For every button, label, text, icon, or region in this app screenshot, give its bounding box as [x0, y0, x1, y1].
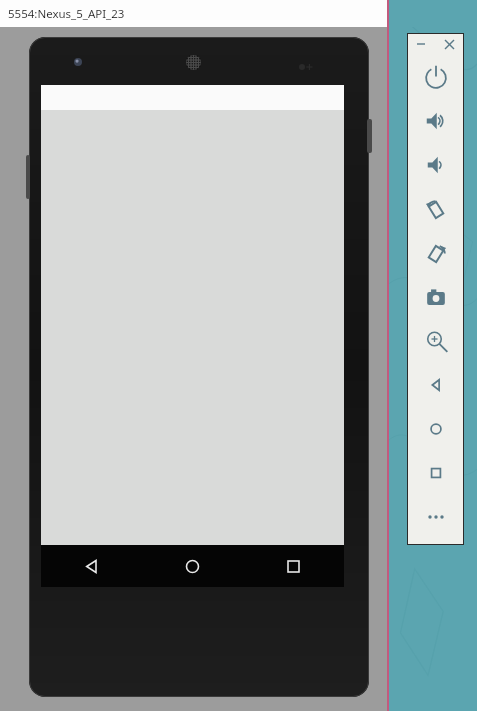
button[interactable]: Power — [407, 55, 464, 99]
staticText: 5554:Nexus_5_API_23 — [8, 6, 125, 22]
button[interactable]: Recent apps — [243, 545, 344, 587]
button[interactable]: Minimize — [407, 33, 435, 55]
button[interactable]: Home — [407, 407, 464, 451]
other: Power — [367, 119, 372, 153]
button[interactable]: Back — [407, 363, 464, 407]
button[interactable]: Volume up — [407, 99, 464, 143]
button[interactable]: Back — [41, 545, 142, 587]
button[interactable]: Rotate left — [407, 187, 464, 231]
button[interactable]: Take screenshot — [407, 275, 464, 319]
button[interactable]: Zoom — [407, 319, 464, 363]
button[interactable]: More — [407, 495, 464, 539]
button[interactable]: Volume down — [407, 143, 464, 187]
button[interactable]: Recent apps — [407, 451, 464, 495]
button[interactable]: Rotate right — [407, 231, 464, 275]
other: Volume — [26, 155, 30, 199]
button[interactable]: Close — [435, 33, 464, 55]
button[interactable]: Home — [142, 545, 243, 587]
